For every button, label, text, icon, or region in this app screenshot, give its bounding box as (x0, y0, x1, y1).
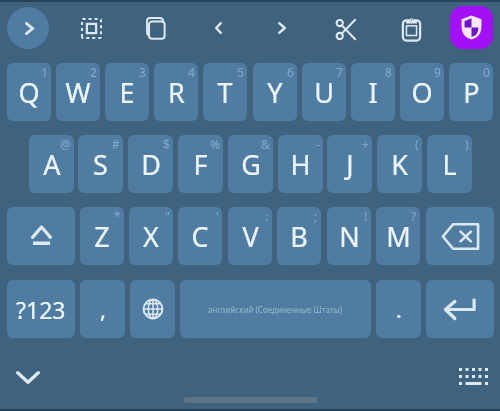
button[interactable]: Z (80, 207, 124, 265)
staticText: N (339, 218, 360, 255)
button[interactable]: L (427, 135, 472, 193)
button[interactable]: , (80, 280, 125, 338)
button[interactable]: S (78, 135, 123, 193)
staticText: S (93, 146, 108, 183)
button[interactable]: Enter (426, 280, 494, 338)
staticText: ?123 (16, 294, 66, 325)
button[interactable]: A (29, 135, 74, 193)
staticText: ' (216, 208, 219, 224)
staticText: " (165, 208, 170, 224)
staticText: ? (411, 208, 417, 224)
staticText: E (119, 74, 135, 111)
button[interactable]: Copy (133, 6, 177, 50)
button[interactable]: Backspace (426, 207, 494, 265)
button[interactable]: Paste (389, 7, 433, 51)
staticText: 1 (41, 64, 48, 80)
button[interactable]: M (376, 207, 420, 265)
button[interactable]: V (228, 207, 272, 265)
staticText: 3 (139, 64, 146, 80)
button[interactable]: C (178, 207, 222, 265)
staticText: I (368, 74, 378, 111)
button[interactable]: Expand toolbar (7, 7, 49, 49)
staticText: , (100, 294, 106, 324)
staticText: W (65, 74, 91, 111)
staticText: 0 (483, 64, 490, 80)
button[interactable]: O (400, 63, 444, 121)
staticText: ; (314, 208, 318, 224)
staticText: M (386, 218, 411, 255)
button[interactable]: Change language (130, 280, 175, 338)
staticText: G (241, 146, 261, 183)
button[interactable]: Previous (196, 6, 240, 50)
button[interactable]: Select all (69, 6, 113, 50)
button[interactable]: Hide keyboard (8, 359, 48, 395)
button[interactable]: B (277, 207, 321, 265)
staticText: + (362, 136, 369, 152)
staticText: $ (163, 136, 170, 152)
button[interactable]: P (449, 63, 493, 121)
staticText: J (346, 146, 354, 183)
button[interactable]: X (129, 207, 173, 265)
button[interactable]: H (278, 135, 323, 193)
staticText: K (391, 146, 408, 183)
staticText: X (143, 218, 159, 255)
button[interactable]: Shift (7, 207, 75, 265)
staticText: 2 (90, 64, 97, 80)
staticText: - (316, 136, 320, 152)
staticText: 6 (287, 64, 294, 80)
staticText: Z (94, 218, 110, 255)
staticText: Q (18, 74, 40, 111)
staticText: : (265, 208, 269, 224)
staticText: @ (60, 136, 71, 152)
staticText: L (442, 146, 457, 183)
staticText: U (314, 74, 334, 111)
button[interactable]: E (105, 63, 149, 121)
staticText: . (396, 294, 402, 324)
staticText: F (193, 146, 208, 183)
staticText: V (242, 218, 259, 255)
button[interactable]: Next (260, 6, 304, 50)
button[interactable]: R (154, 63, 198, 121)
staticText: 5 (237, 64, 244, 80)
button[interactable]: Cut (323, 7, 367, 51)
button[interactable]: W (56, 63, 100, 121)
button[interactable]: ?123 (7, 280, 75, 338)
button[interactable]: Y (253, 63, 297, 121)
button[interactable]: Switch keyboard (452, 358, 494, 394)
button[interactable]: N (327, 207, 371, 265)
staticText: R (168, 74, 185, 111)
button[interactable]: . (376, 280, 421, 338)
button[interactable]: J (327, 135, 372, 193)
button[interactable]: D (128, 135, 173, 193)
staticText: * (114, 208, 121, 224)
staticText: 8 (385, 64, 392, 80)
staticText: O (411, 74, 433, 111)
button[interactable]: T (203, 63, 247, 121)
staticText: # (112, 136, 120, 152)
staticText: D (141, 146, 161, 183)
staticText: ! (364, 208, 368, 224)
button[interactable]: U (302, 63, 346, 121)
button[interactable]: английский (Соединенные Штаты) (180, 280, 371, 338)
button[interactable]: G (228, 135, 273, 193)
staticText: Y (267, 74, 283, 111)
staticText: A (43, 146, 61, 183)
staticText: ( (415, 136, 419, 152)
button[interactable]: Q (7, 63, 51, 121)
staticText: 9 (434, 64, 441, 80)
staticText: ) (465, 136, 469, 152)
staticText: % (210, 136, 220, 152)
button[interactable]: Security (450, 6, 493, 49)
button[interactable]: F (178, 135, 223, 193)
staticText: B (290, 218, 308, 255)
staticText: 7 (336, 64, 343, 80)
staticText: P (463, 74, 480, 111)
staticText: C (191, 218, 209, 255)
staticText: H (290, 146, 311, 183)
staticText: 4 (188, 64, 195, 80)
staticText: английский (Соединенные Штаты) (208, 304, 343, 315)
staticText: & (261, 136, 270, 152)
button[interactable]: K (377, 135, 422, 193)
button[interactable]: I (351, 63, 395, 121)
staticText: T (217, 74, 233, 111)
